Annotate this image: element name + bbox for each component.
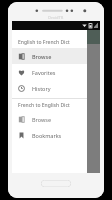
staticText: French to English Dict <box>18 102 70 109</box>
staticText: History <box>32 85 51 92</box>
staticText: Favorites <box>32 69 56 76</box>
button[interactable]: Favorites <box>12 64 87 80</box>
button[interactable]: Bookmarks <box>12 127 87 143</box>
button[interactable]: Browse <box>12 48 87 64</box>
button[interactable]: Home <box>41 180 71 187</box>
staticText: DroidTR <box>48 15 64 20</box>
staticText: Bookmarks <box>32 132 62 139</box>
button[interactable]: History <box>12 80 87 96</box>
staticText: English to French Dict <box>18 39 70 46</box>
staticText: Browse <box>32 53 52 60</box>
button[interactable]: Browse <box>12 111 87 127</box>
staticText: Browse <box>32 116 52 123</box>
